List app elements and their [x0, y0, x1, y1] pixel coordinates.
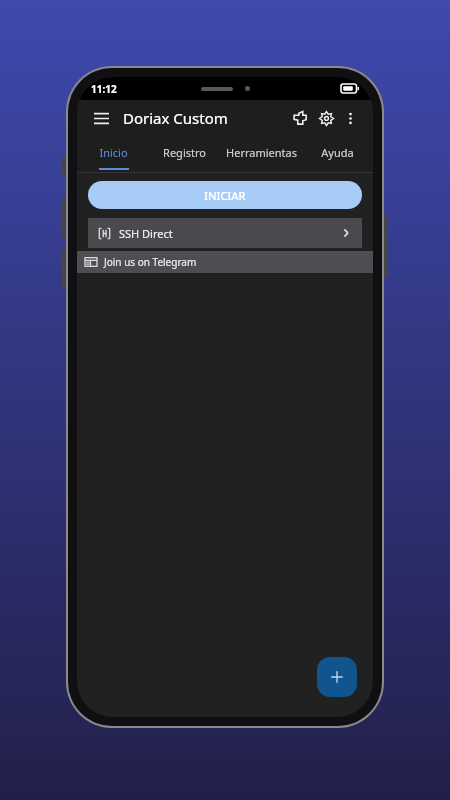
button[interactable]: Extensions [287, 105, 313, 131]
button[interactable]: Herramientas [220, 136, 302, 168]
staticText: Doriax Custom [123, 108, 228, 128]
button[interactable]: SSH Direct [88, 218, 362, 248]
staticText: Inicio [99, 145, 128, 160]
staticText: Ayuda [321, 145, 354, 160]
staticText: Join us on Telegram [104, 255, 197, 269]
button[interactable]: INICIAR [88, 181, 362, 209]
button[interactable]: Inicio [77, 136, 149, 168]
button[interactable]: Ayuda [302, 136, 373, 168]
staticText: Registro [163, 145, 206, 160]
staticText: 11:12 [91, 82, 117, 96]
staticText: SSH Direct [119, 226, 173, 241]
button[interactable]: Registro [149, 136, 220, 168]
button[interactable]: Join us on Telegram [77, 251, 373, 273]
staticText: Herramientas [226, 145, 297, 160]
button[interactable]: Add [317, 657, 357, 697]
staticText: INICIAR [204, 188, 246, 203]
button[interactable]: More options [339, 107, 361, 129]
button[interactable]: Settings [313, 105, 339, 131]
button[interactable]: Menu [89, 106, 113, 130]
